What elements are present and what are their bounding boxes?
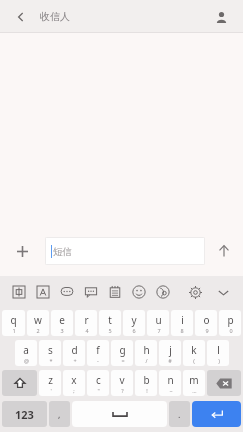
staticText: g — [119, 343, 126, 357]
staticText: 6 — [132, 327, 136, 334]
staticText: u — [155, 313, 162, 327]
button[interactable]: n — [159, 370, 181, 396]
staticText: 收信人 — [40, 10, 70, 23]
staticText: ' — [50, 387, 52, 394]
button[interactable]: c — [87, 370, 109, 396]
button[interactable]: t — [99, 310, 121, 336]
staticText: 1 — [12, 327, 16, 334]
staticText: s — [48, 343, 53, 357]
button[interactable]: p — [219, 310, 241, 336]
staticText: d — [71, 343, 78, 357]
button[interactable]: Back — [10, 6, 32, 28]
button[interactable]: m — [183, 370, 205, 396]
staticText: r — [84, 313, 89, 327]
button[interactable]: 123 — [2, 401, 47, 427]
staticText: - — [97, 357, 99, 364]
staticText: 7 — [157, 327, 161, 334]
button[interactable]: w — [27, 310, 49, 336]
button[interactable]: 短信 — [45, 237, 205, 265]
staticText: p — [227, 313, 234, 327]
button[interactable]: s — [39, 340, 61, 366]
staticText: ; — [73, 387, 75, 394]
staticText: ) — [218, 357, 220, 364]
staticText: … — [192, 387, 197, 394]
staticText: ( — [193, 357, 195, 364]
staticText: 5 — [108, 327, 112, 334]
staticText: 4 — [85, 327, 89, 334]
staticText: ? — [121, 387, 124, 394]
button[interactable]: . — [169, 401, 190, 427]
button[interactable]: l — [207, 340, 229, 366]
button[interactable]: Sticker — [151, 276, 175, 308]
staticText: 2 — [36, 327, 40, 334]
button[interactable]: k — [183, 340, 205, 366]
button[interactable]: Clipboard — [103, 276, 127, 308]
button[interactable]: Hide keyboard — [209, 276, 237, 308]
button[interactable]: o — [195, 310, 217, 336]
staticText: c — [96, 373, 101, 387]
button[interactable]: e — [51, 310, 73, 336]
button[interactable]: Shift — [2, 370, 37, 396]
staticText: , — [58, 408, 61, 420]
button[interactable]: Voice chat — [55, 276, 79, 308]
button[interactable]: x — [63, 370, 85, 396]
staticText: / — [145, 357, 148, 364]
staticText: m — [189, 373, 199, 387]
button[interactable]: r — [75, 310, 97, 336]
button[interactable]: Settings — [181, 276, 209, 308]
button[interactable]: i — [171, 310, 193, 336]
staticText: 8 — [180, 327, 184, 334]
staticText: 0 — [229, 327, 233, 334]
button[interactable]: , — [49, 401, 70, 427]
staticText: x — [71, 373, 77, 387]
button[interactable]: Send — [205, 226, 243, 276]
staticText: 短信 — [53, 246, 72, 258]
button[interactable]: Chinese input — [6, 276, 31, 308]
staticText: = — [121, 357, 125, 364]
staticText: v — [119, 373, 125, 387]
staticText: j — [169, 343, 172, 357]
staticText: a — [23, 343, 29, 357]
button[interactable]: Contacts — [209, 5, 233, 29]
staticText: z — [48, 373, 53, 387]
staticText: 9 — [205, 327, 209, 334]
button[interactable]: Emoji — [127, 276, 151, 308]
button[interactable]: Add attachment — [0, 226, 45, 276]
staticText: + — [73, 357, 77, 364]
staticText: o — [203, 313, 210, 327]
button[interactable]: b — [135, 370, 157, 396]
button[interactable]: v — [111, 370, 133, 396]
staticText: ~ — [169, 387, 173, 394]
button[interactable]: z — [39, 370, 61, 396]
button[interactable]: u — [147, 310, 169, 336]
staticText: i — [181, 313, 184, 327]
staticText: e — [59, 313, 65, 327]
staticText: " — [97, 387, 100, 394]
button[interactable]: Space — [72, 401, 167, 427]
button[interactable]: q — [2, 310, 25, 336]
staticText: # — [168, 357, 172, 364]
button[interactable]: g — [111, 340, 133, 366]
staticText: t — [108, 313, 112, 327]
staticText: . — [178, 408, 181, 420]
staticText: * — [49, 357, 53, 364]
staticText: f — [96, 343, 100, 357]
button[interactable]: d — [63, 340, 85, 366]
staticText: l — [217, 343, 220, 357]
staticText: ! — [146, 387, 148, 394]
staticText: n — [167, 373, 174, 387]
button[interactable]: Quick reply — [79, 276, 103, 308]
button[interactable]: j — [159, 340, 181, 366]
staticText: 3 — [60, 327, 64, 334]
staticText: 123 — [15, 407, 34, 422]
button[interactable]: Enter — [192, 401, 241, 427]
button[interactable]: a — [15, 340, 37, 366]
button[interactable]: h — [135, 340, 157, 366]
button[interactable]: y — [123, 310, 145, 336]
button[interactable]: Pinyin — [31, 276, 55, 308]
button[interactable]: f — [87, 340, 109, 366]
staticText: b — [143, 373, 150, 387]
staticText: q — [10, 313, 17, 327]
staticText: k — [191, 343, 197, 357]
button[interactable]: Backspace — [207, 370, 241, 396]
